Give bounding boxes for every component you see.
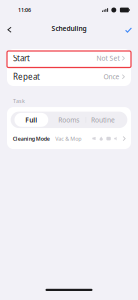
- button[interactable]: Repeat: [7, 67, 131, 86]
- staticText: Routine: [91, 115, 115, 124]
- button[interactable]: Routine: [86, 113, 120, 127]
- staticText: Not Set: [96, 54, 119, 63]
- staticText: 11:06: [18, 6, 31, 14]
- staticText: Start: [13, 53, 30, 63]
- staticText: Rooms: [58, 115, 79, 124]
- button[interactable]: Rooms: [52, 113, 86, 127]
- staticText: Once: [103, 72, 119, 81]
- staticText: Scheduling: [51, 24, 86, 33]
- staticText: Task: [13, 97, 25, 105]
- button[interactable]: Back: [1, 22, 17, 35]
- button[interactable]: Full: [14, 113, 48, 127]
- button[interactable]: Start: [7, 49, 131, 67]
- staticText: Repeat: [13, 71, 40, 82]
- staticText: Full: [25, 115, 37, 124]
- staticText: Cleaning Mode: [13, 135, 50, 142]
- staticText: Vac & Mop: [55, 135, 81, 142]
- button[interactable]: Done: [120, 22, 136, 35]
